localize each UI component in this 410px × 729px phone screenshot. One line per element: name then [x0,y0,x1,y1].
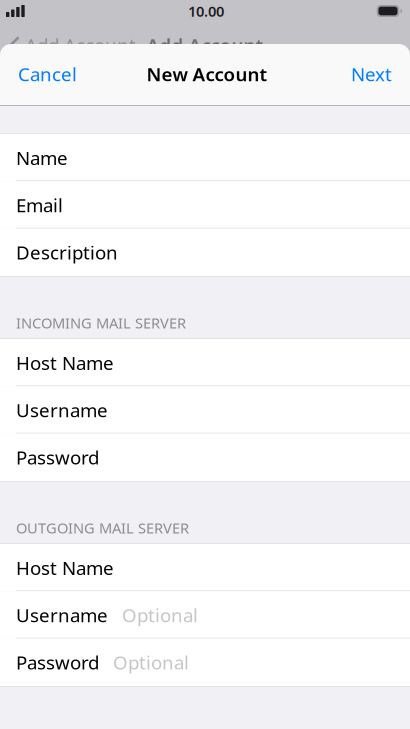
button[interactable]: Back to Add Account [0,22,136,68]
staticText: Username [16,398,108,422]
staticText: Host Name [16,555,114,580]
button[interactable]: Email [0,181,410,229]
staticText: Description [16,240,118,265]
staticText: Add Account [25,33,136,57]
staticText: New Account [146,62,267,86]
button[interactable]: Name [0,134,410,181]
staticText: Name [16,145,68,170]
staticText: Host Name [16,350,114,375]
staticText: Next [351,62,392,86]
staticText: INCOMING MAIL SERVER [16,313,186,332]
button[interactable]: Cancel [0,44,95,104]
button[interactable]: Password [0,639,410,686]
staticText: Username [16,603,108,627]
staticText: 10.00 [188,1,224,21]
button[interactable]: Host Name [0,544,410,591]
button[interactable]: Username [0,386,410,434]
button[interactable]: Password [0,434,410,481]
staticText: Add Account [146,33,263,57]
button[interactable]: Host Name [0,339,410,386]
button[interactable]: Username [0,591,410,639]
staticText: Password [16,650,99,675]
staticText: Optional [113,650,189,675]
button[interactable]: Next [333,44,410,104]
staticText: Password [16,445,99,470]
button[interactable]: Description [0,229,410,276]
staticText: Email [16,193,63,217]
staticText: OUTGOING MAIL SERVER [16,518,189,537]
staticText: Cancel [18,62,77,86]
staticText: Optional [122,603,198,627]
